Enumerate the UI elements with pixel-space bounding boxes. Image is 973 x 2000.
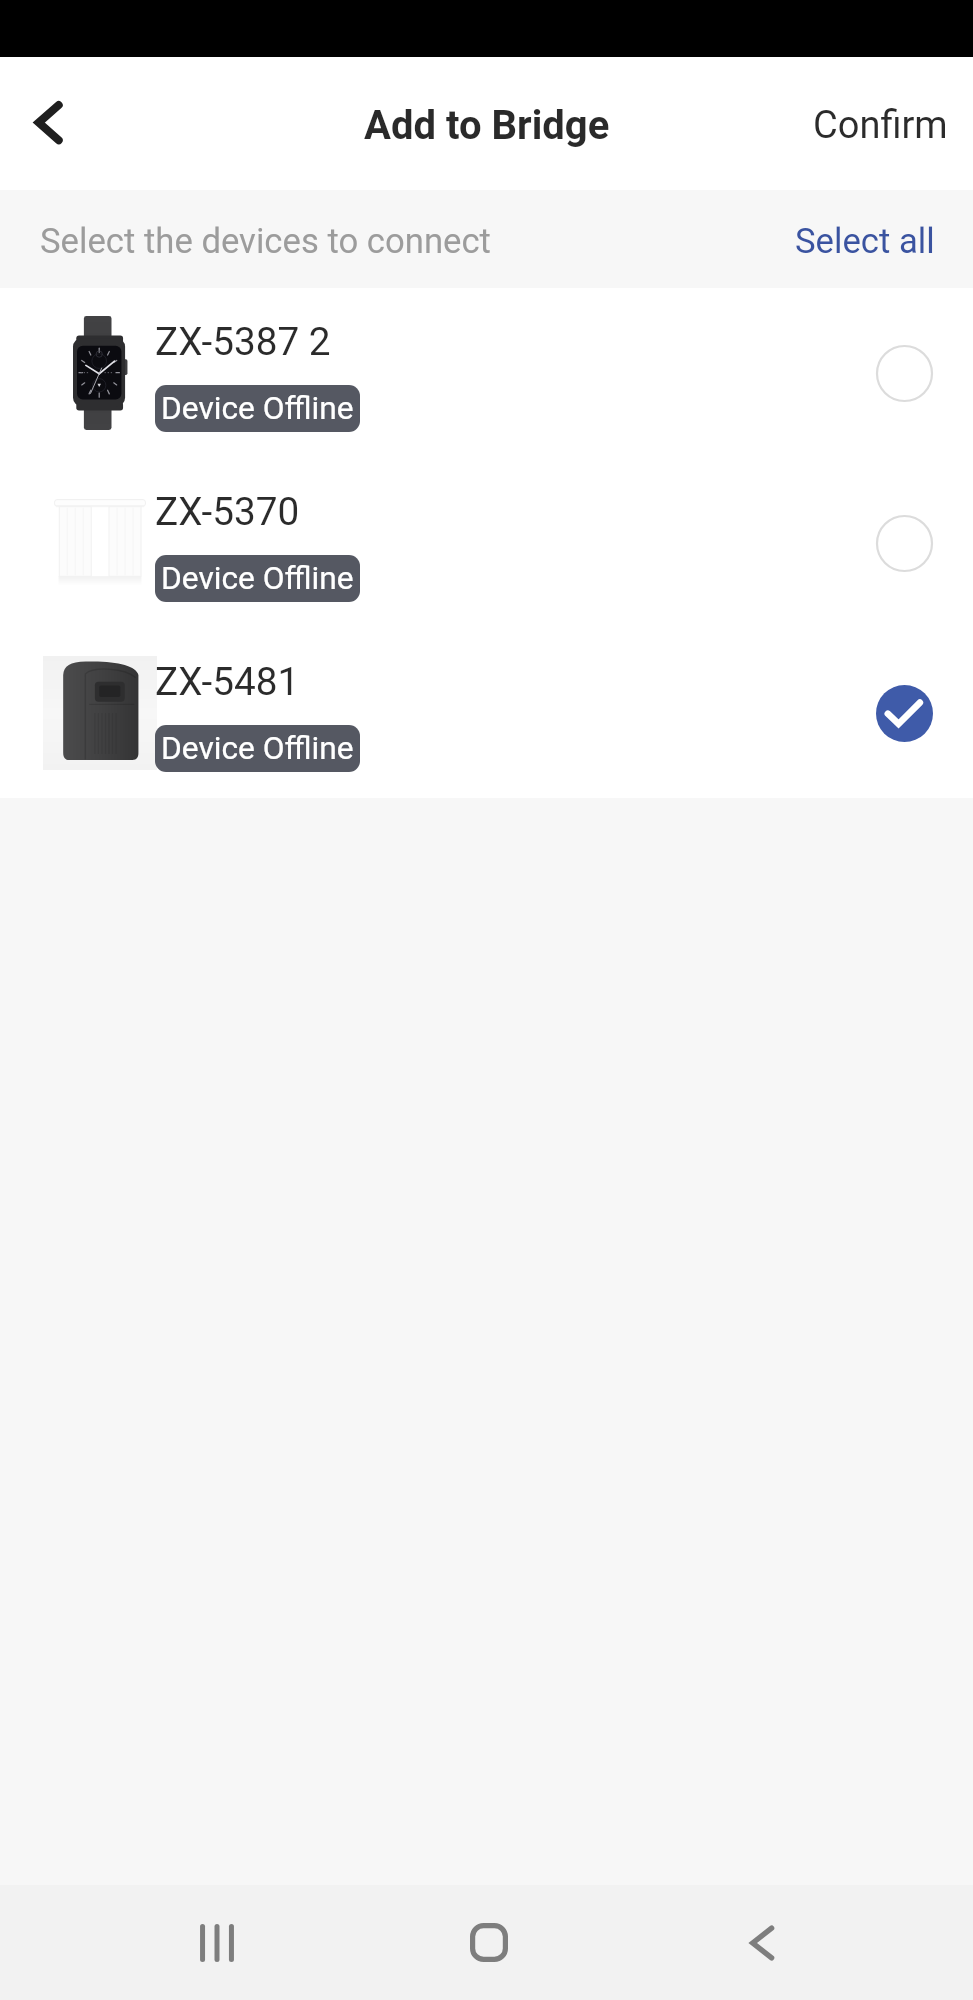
- button[interactable]: Confirm: [813, 103, 973, 148]
- button[interactable]: ZX-5481: [0, 628, 973, 798]
- staticText: Add to Bridge: [364, 102, 610, 149]
- button[interactable]: Back: [10, 94, 70, 154]
- button[interactable]: ZX-5387 2: [0, 288, 973, 458]
- button[interactable]: Back: [702, 1885, 822, 2000]
- staticText: Device Offline: [161, 560, 354, 597]
- staticText: ZX-5481: [155, 659, 300, 704]
- button[interactable]: Not selected: [833, 458, 973, 628]
- staticText: Select all: [795, 221, 935, 262]
- button[interactable]: Select all: [795, 221, 973, 262]
- staticText: Device Offline: [161, 390, 354, 427]
- button[interactable]: Recent apps: [157, 1885, 277, 2000]
- staticText: ZX-5370: [155, 489, 300, 534]
- button[interactable]: Home: [429, 1885, 549, 2000]
- staticText: Select the devices to connect: [40, 221, 491, 262]
- staticText: Confirm: [813, 103, 948, 148]
- staticText: Device Offline: [161, 730, 354, 767]
- button[interactable]: ZX-5370: [0, 458, 973, 628]
- button[interactable]: Selected: [833, 628, 973, 798]
- button[interactable]: Not selected: [833, 288, 973, 458]
- staticText: ZX-5387 2: [155, 319, 331, 364]
